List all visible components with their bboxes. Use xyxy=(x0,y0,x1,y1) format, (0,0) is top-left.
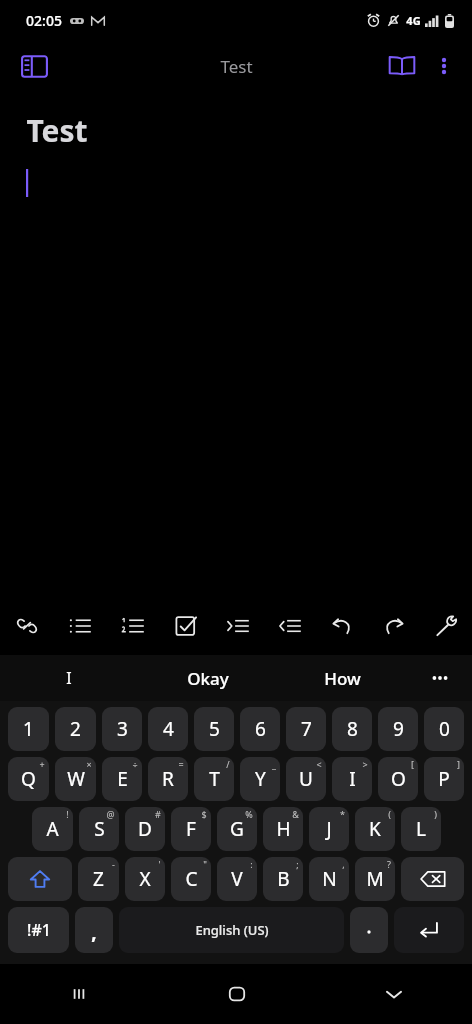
button[interactable]: X xyxy=(125,857,165,901)
staticText: English (US) xyxy=(195,921,269,939)
staticText: 4G xyxy=(406,13,421,28)
button[interactable]: 7 xyxy=(286,707,326,751)
staticText: W xyxy=(67,766,85,792)
staticText: ; xyxy=(296,858,299,870)
button[interactable]: O xyxy=(378,757,418,801)
staticText: F xyxy=(186,816,196,842)
button[interactable]: Indent xyxy=(212,597,264,655)
button[interactable]: B xyxy=(263,857,303,901)
staticText: Test xyxy=(220,55,253,78)
button[interactable]: Home xyxy=(158,964,315,1024)
button[interactable]: 1 xyxy=(8,707,49,751)
button[interactable]: N xyxy=(309,857,349,901)
staticText: J xyxy=(326,816,332,842)
staticText: % xyxy=(245,808,253,820)
button[interactable]: M xyxy=(355,857,395,901)
button[interactable]: Checklist xyxy=(159,597,212,655)
button[interactable]: 4 xyxy=(148,707,188,751)
staticText: 0 xyxy=(439,716,450,742)
button[interactable]: Numbered list xyxy=(106,597,159,655)
button[interactable]: 5 xyxy=(194,707,234,751)
button[interactable]: H xyxy=(263,807,303,851)
staticText: U xyxy=(299,766,313,792)
staticText: O xyxy=(391,766,406,792)
button[interactable]: Redo xyxy=(368,597,420,655)
button[interactable]: 2 xyxy=(55,707,96,751)
button[interactable]: E xyxy=(102,757,142,801)
button[interactable]: R xyxy=(148,757,188,801)
button[interactable]: Test xyxy=(26,110,88,151)
button[interactable]: Q xyxy=(8,757,49,801)
staticText: C xyxy=(185,866,198,892)
button[interactable]: I xyxy=(332,757,372,801)
button[interactable]: , xyxy=(75,907,113,953)
button[interactable]: Insert link xyxy=(0,597,53,655)
button[interactable]: 8 xyxy=(332,707,372,751)
staticText: S xyxy=(94,816,105,842)
button[interactable]: 9 xyxy=(378,707,418,751)
button[interactable]: Settings xyxy=(420,597,472,655)
button[interactable]: J xyxy=(309,807,349,851)
button[interactable]: 0 xyxy=(424,707,464,751)
staticText: 2 xyxy=(70,716,81,742)
button[interactable]: 3 xyxy=(102,707,142,751)
button[interactable]: F xyxy=(171,807,211,851)
button[interactable]: Outdent xyxy=(264,597,316,655)
button[interactable]: D xyxy=(125,807,165,851)
button[interactable]: Toggle sidebar xyxy=(12,44,56,88)
button[interactable]: 6 xyxy=(240,707,280,751)
button[interactable]: W xyxy=(55,757,96,801)
button[interactable]: English (US) xyxy=(119,907,344,953)
button[interactable]: !#1 xyxy=(8,907,69,953)
staticText: * xyxy=(340,808,345,820)
button[interactable]: T xyxy=(194,757,234,801)
button[interactable]: How xyxy=(277,655,407,701)
button[interactable]: Z xyxy=(78,857,119,901)
button[interactable]: V xyxy=(217,857,257,901)
staticText: M xyxy=(366,866,384,892)
button[interactable]: Y xyxy=(240,757,280,801)
button[interactable]: More options xyxy=(424,46,464,86)
button[interactable]: Read mode xyxy=(380,44,424,88)
button[interactable]: C xyxy=(171,857,211,901)
button[interactable]: S xyxy=(79,807,119,851)
staticText: 02:05 xyxy=(26,11,62,30)
button[interactable]: A xyxy=(32,807,73,851)
button[interactable]: Okay xyxy=(138,655,277,701)
button[interactable]: K xyxy=(355,807,395,851)
button[interactable]: Bulleted list xyxy=(53,597,106,655)
button[interactable]: More suggestions xyxy=(407,655,472,701)
staticText: : xyxy=(250,858,253,870)
button[interactable]: I xyxy=(0,655,138,701)
staticText: R xyxy=(162,766,174,792)
staticText: Q xyxy=(21,766,36,792)
button[interactable]: G xyxy=(217,807,257,851)
staticText: 1 xyxy=(23,716,34,742)
staticText: H xyxy=(276,816,291,842)
staticText: = xyxy=(178,758,184,770)
staticText: # xyxy=(155,808,161,820)
staticText: ) xyxy=(434,808,437,820)
staticText: K xyxy=(369,816,381,842)
button[interactable]: Shift xyxy=(8,857,72,901)
staticText: ' xyxy=(158,858,161,870)
button[interactable]: Undo xyxy=(316,597,368,655)
staticText: X xyxy=(139,866,151,892)
staticText: - xyxy=(112,858,115,870)
staticText: @ xyxy=(106,808,115,820)
button[interactable] xyxy=(350,907,388,953)
button[interactable]: Hide keyboard xyxy=(315,964,472,1024)
staticText: [ xyxy=(411,758,414,770)
button[interactable]: Backspace xyxy=(401,857,464,901)
staticText: $ xyxy=(201,808,207,820)
button[interactable]: Recent apps xyxy=(0,964,158,1024)
staticText: 5 xyxy=(209,716,220,742)
button[interactable]: L xyxy=(401,807,441,851)
staticText: ÷ xyxy=(132,758,138,770)
staticText: V xyxy=(231,866,243,892)
button[interactable]: P xyxy=(424,757,464,801)
staticText: ( xyxy=(388,808,391,820)
button[interactable]: Enter xyxy=(394,907,464,953)
button[interactable]: U xyxy=(286,757,326,801)
staticText: < xyxy=(316,758,322,770)
